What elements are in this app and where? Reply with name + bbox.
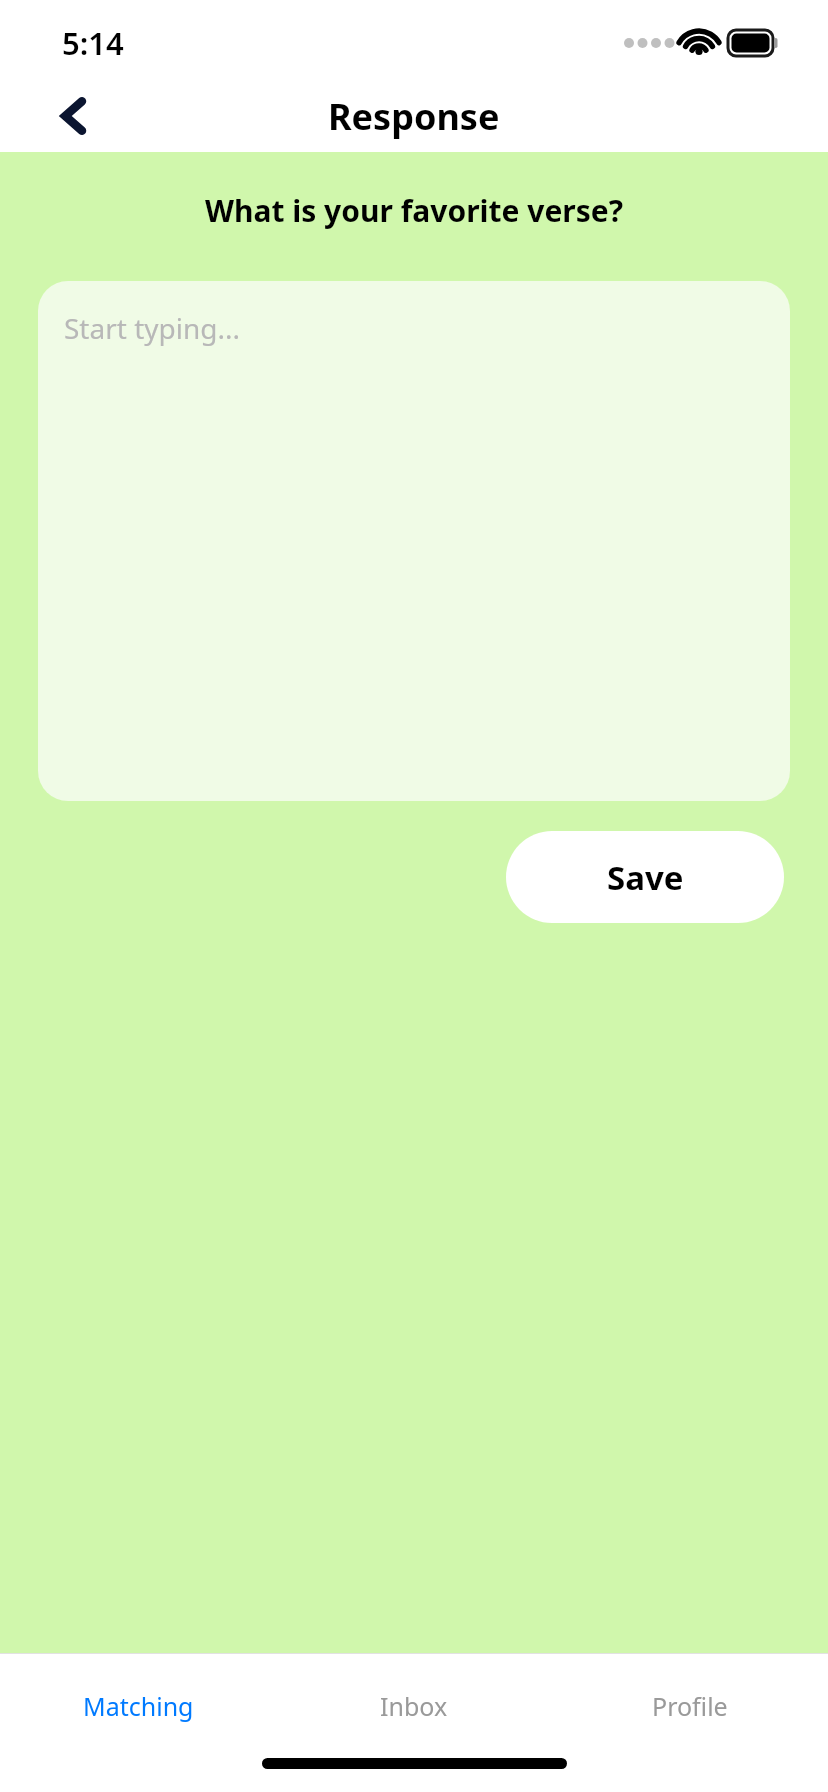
staticText: Matching bbox=[83, 1689, 194, 1723]
staticText: Save bbox=[607, 855, 684, 900]
button[interactable]: Back bbox=[42, 84, 106, 148]
staticText: What is your favorite verse? bbox=[0, 190, 828, 231]
staticText: Start typing... bbox=[64, 309, 241, 347]
staticText: 5:14 bbox=[62, 22, 124, 64]
staticText: Inbox bbox=[380, 1689, 448, 1723]
staticText: Profile bbox=[652, 1689, 728, 1723]
button[interactable]: Profile bbox=[552, 1654, 828, 1758]
button[interactable]: Inbox bbox=[276, 1654, 552, 1758]
button[interactable]: Save bbox=[506, 831, 784, 923]
button[interactable]: Start typing... bbox=[38, 281, 790, 801]
staticText: Response bbox=[328, 92, 500, 141]
button[interactable]: Matching bbox=[0, 1654, 276, 1758]
